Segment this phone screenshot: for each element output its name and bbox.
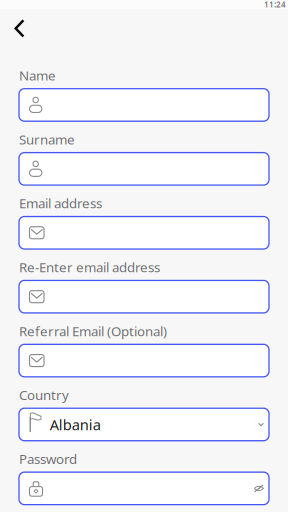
button[interactable]: Password <box>19 472 269 505</box>
button[interactable]: Back <box>0 14 36 43</box>
button[interactable]: Referral Email (Optional) <box>19 344 269 377</box>
staticText: Password <box>19 450 77 468</box>
staticText: 11:24 <box>264 0 286 10</box>
button[interactable]: Re-Enter email address <box>19 280 269 313</box>
staticText: Albania <box>50 415 101 434</box>
staticText: Re-Enter email address <box>19 258 160 276</box>
button[interactable]: Surname <box>19 153 269 185</box>
button[interactable]: Name <box>19 89 269 121</box>
button[interactable]: Email address <box>19 216 269 249</box>
button[interactable]: Country, Albania <box>19 408 269 441</box>
button[interactable]: Show password <box>254 484 264 493</box>
staticText: Name <box>19 66 56 84</box>
staticText: Country <box>19 386 69 404</box>
staticText: Surname <box>19 130 75 148</box>
staticText: Referral Email (Optional) <box>19 322 167 340</box>
staticText: Email address <box>19 194 102 212</box>
